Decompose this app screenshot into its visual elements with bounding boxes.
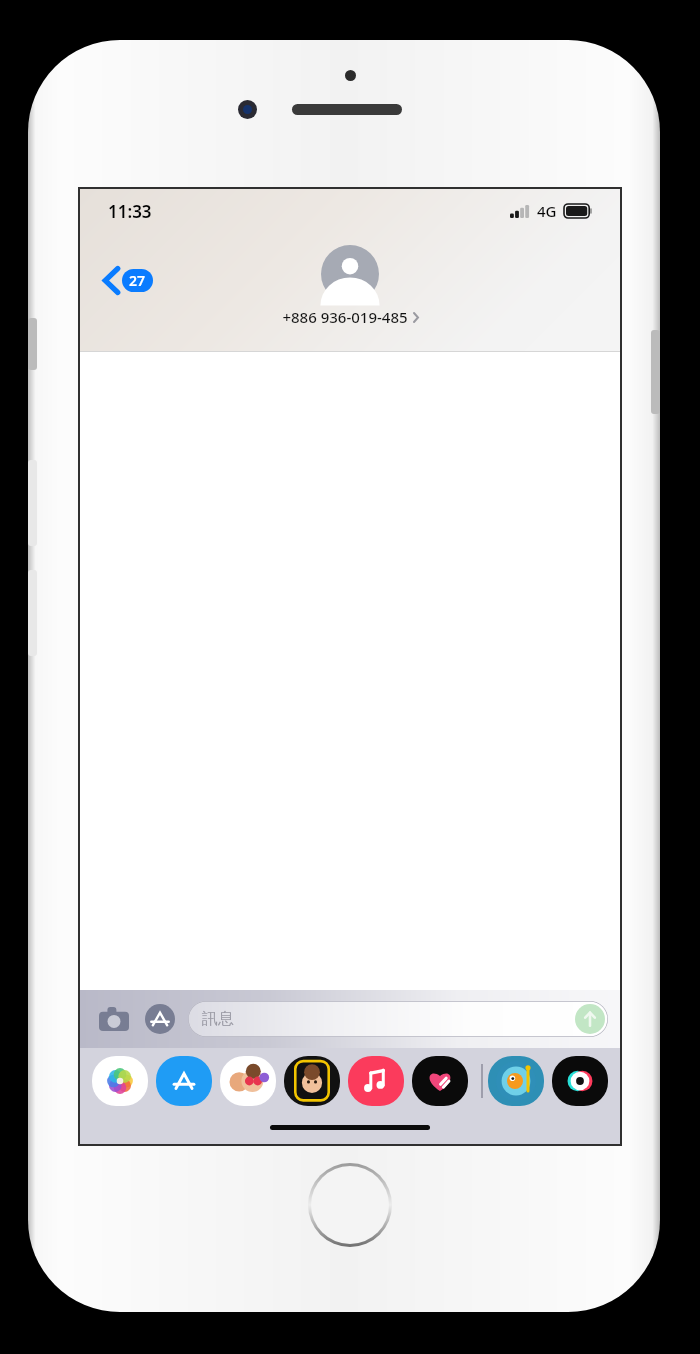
button[interactable]: App 3 [220,1056,276,1106]
staticText: 27 [129,271,146,290]
button[interactable]: App 8 [552,1056,608,1106]
button[interactable]: +886 936-019-485 [80,245,620,327]
button[interactable]: Send [575,1004,605,1034]
staticText: 訊息 [202,1009,234,1029]
button[interactable]: 訊息 [188,1001,608,1037]
staticText: 11:33 [108,200,152,223]
button[interactable]: App 5 [348,1056,404,1106]
button[interactable]: App 2 [156,1056,212,1106]
button[interactable]: App 1 [92,1056,148,1106]
button[interactable]: App 6 [412,1056,468,1106]
button[interactable]: Camera [94,999,134,1039]
button[interactable]: Back to conversations, 27 unread [100,265,157,296]
staticText: +886 936-019-485 [282,307,408,327]
staticText: 4G [537,201,557,221]
button[interactable]: App 7 [488,1056,544,1106]
button[interactable]: App 4 [284,1056,340,1106]
button[interactable]: iMessage apps [140,999,180,1039]
